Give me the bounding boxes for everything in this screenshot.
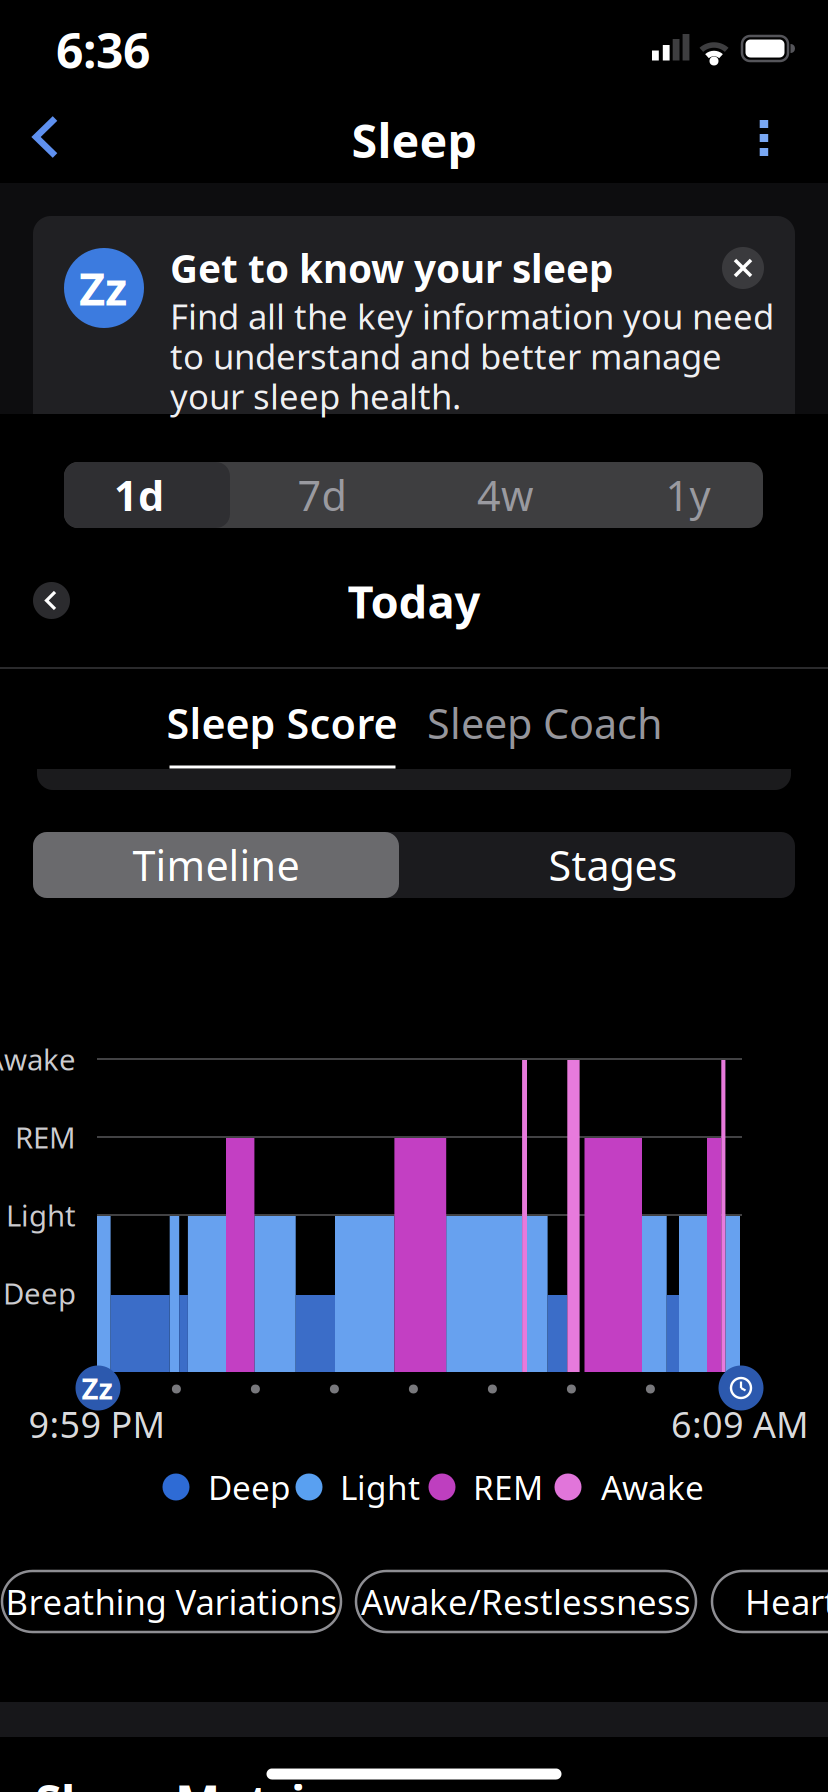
staticText: Awake <box>0 1039 76 1078</box>
staticText: REM <box>15 1117 76 1156</box>
button[interactable] <box>722 247 764 289</box>
staticText: Deep <box>3 1273 76 1312</box>
staticText: 1y <box>665 468 710 522</box>
staticText: 1d <box>114 468 164 522</box>
staticText: 4w <box>477 468 533 522</box>
staticText: Awake <box>601 1465 704 1509</box>
staticText: Sleep <box>351 109 476 171</box>
staticText: Awake/Restlessness <box>361 1578 691 1624</box>
staticText: 9:59 PM <box>28 1400 165 1448</box>
staticText: 7d <box>297 468 346 522</box>
button[interactable] <box>24 113 68 160</box>
staticText: to understand and better manage <box>170 333 722 379</box>
button[interactable]: 7d <box>237 462 407 528</box>
staticText: Sleep Score <box>166 696 397 750</box>
staticText: Get to know your sleep <box>170 242 613 294</box>
staticText: Heart Rate <box>745 1578 828 1624</box>
button[interactable]: Awake/Restlessness <box>356 1571 696 1632</box>
button[interactable]: Stages <box>418 832 808 898</box>
button[interactable] <box>33 582 70 619</box>
button[interactable]: 1y <box>603 462 773 528</box>
staticText: 6:09 AM <box>671 1400 809 1448</box>
button[interactable] <box>742 115 786 161</box>
staticText: Light <box>6 1195 76 1234</box>
button[interactable]: Timeline <box>33 832 399 898</box>
button[interactable]: Sleep Coach <box>415 688 675 758</box>
staticText: Sleep Coach <box>427 696 663 750</box>
button[interactable] <box>712 1571 828 1632</box>
staticText: Timeline <box>132 838 299 892</box>
staticText: Deep <box>208 1465 291 1509</box>
staticText: Zz <box>79 258 127 318</box>
staticText: Today <box>347 571 480 631</box>
staticText: Find all the key information you need <box>170 293 774 339</box>
button[interactable]: 1d <box>56 462 222 528</box>
staticText: REM <box>473 1465 543 1509</box>
staticText: Zz <box>81 1368 112 1407</box>
button[interactable]: 4w <box>420 462 590 528</box>
staticText: Light <box>340 1465 420 1509</box>
button[interactable]: Breathing Variations <box>2 1571 341 1632</box>
staticText: Sleep Metrics <box>35 1770 354 1792</box>
staticText: Breathing Variations <box>5 1578 337 1624</box>
staticText: your sleep health. <box>170 373 461 419</box>
button[interactable]: Sleep Score <box>152 688 412 758</box>
staticText: 6:36 <box>56 18 150 82</box>
staticText: Stages <box>548 838 677 892</box>
